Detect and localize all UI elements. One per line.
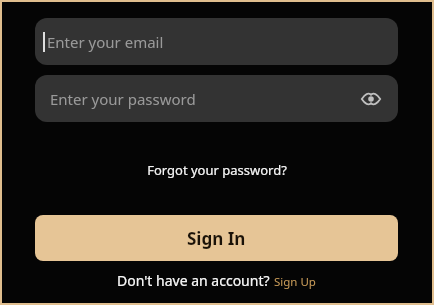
staticText: Sign In <box>187 227 246 250</box>
staticText: Forgot your password? <box>147 161 287 179</box>
button[interactable]: Enter your password <box>35 75 398 122</box>
button[interactable]: Show password <box>358 86 384 112</box>
button[interactable]: Sign In <box>35 215 398 261</box>
button[interactable]: Enter your email <box>35 18 398 65</box>
staticText: Don't have an account? <box>117 271 274 290</box>
staticText: Enter your email <box>47 32 164 52</box>
staticText: Sign Up <box>274 274 316 290</box>
staticText: Enter your password <box>50 89 196 109</box>
button[interactable]: Forgot your password? <box>35 158 398 182</box>
button[interactable]: Sign Up <box>274 274 316 290</box>
